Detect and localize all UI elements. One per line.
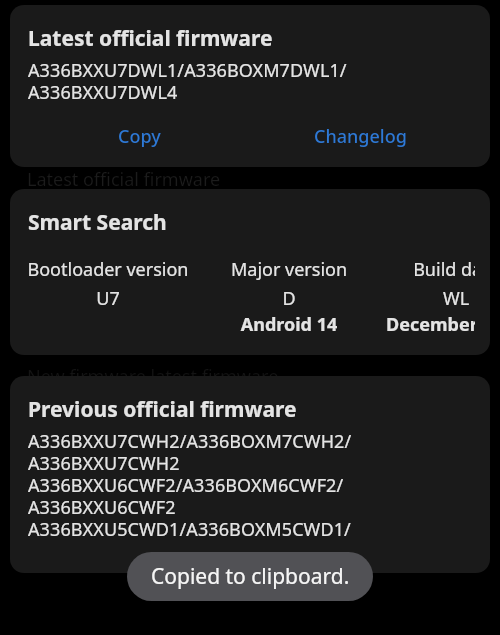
button[interactable]: Build date — [361, 257, 475, 332]
button[interactable]: Bootloader version — [28, 257, 203, 307]
staticText: A336BXXU7DWL1/A336BOXM7DWL1/ A336BXXU7DW… — [28, 58, 347, 104]
button[interactable]: Copy — [100, 118, 179, 155]
staticText: New firmware latest firmware — [27, 364, 279, 389]
staticText: December, 2023 — [361, 312, 475, 337]
button[interactable]: Latest official firmware card — [10, 5, 490, 167]
staticText: Copied to clipboard. — [151, 562, 350, 591]
staticText: Latest official firmware — [28, 24, 273, 53]
staticText: Smart Search — [28, 208, 167, 237]
button[interactable]: Smart Search card — [10, 189, 490, 355]
staticText: WL — [361, 286, 475, 311]
staticText: Latest official firmware — [27, 167, 221, 192]
staticText: Copy — [118, 124, 161, 149]
button[interactable]: Major version — [194, 257, 384, 332]
staticText: Major version — [194, 257, 384, 282]
staticText: U7 — [28, 286, 203, 311]
button[interactable]: Previous official firmware card — [10, 376, 490, 573]
staticText: Bootloader version — [28, 257, 203, 282]
staticText: Build date — [361, 257, 475, 282]
staticText: Previous official firmware — [28, 395, 297, 424]
staticText: Changelog — [314, 124, 407, 149]
staticText: A336BXXU7CWH2/A336BOXM7CWH2/ A336BXXU7CW… — [28, 429, 352, 541]
staticText: D — [194, 286, 384, 311]
button[interactable]: Changelog — [296, 118, 425, 155]
staticText: Android 14 — [194, 312, 384, 337]
